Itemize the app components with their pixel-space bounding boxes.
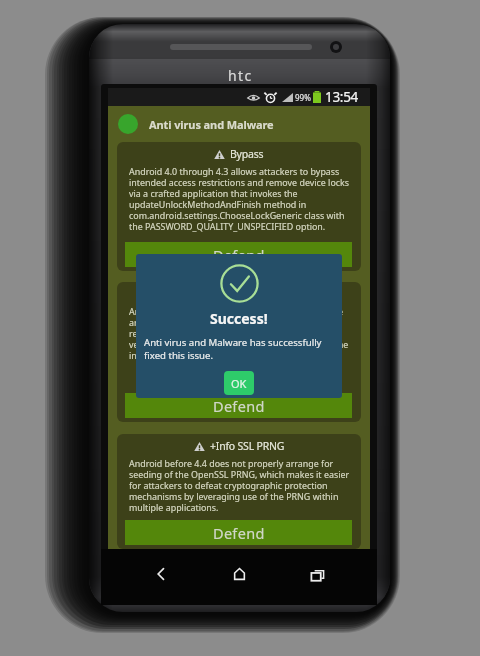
staticText: Defend	[213, 396, 265, 416]
staticText: Defend	[213, 245, 265, 265]
staticText: Anti virus and Malware has successfully …	[144, 336, 335, 362]
button[interactable]: Back	[143, 556, 179, 592]
button[interactable]: Recent apps	[299, 556, 335, 592]
staticText: Anti virus and Malware	[149, 117, 274, 132]
staticText: Android 1.6 through 4.2 allows attackers…	[129, 305, 352, 361]
staticText: Android before 4.4 does not properly arr…	[129, 457, 352, 513]
button[interactable]: Master Key	[117, 282, 361, 422]
button[interactable]: Home	[221, 556, 257, 592]
button[interactable]: Bypass	[117, 142, 361, 271]
staticText: +Info SSL PRNG	[210, 439, 285, 453]
staticText: 13:54	[325, 88, 359, 106]
button[interactable]: Defend	[125, 520, 352, 545]
staticText: htc	[228, 66, 253, 84]
staticText: Defend	[213, 523, 265, 543]
button[interactable]: +Info SSL PRNG	[117, 434, 361, 549]
staticText: Success!	[210, 309, 268, 328]
button[interactable]: Anti virus and Malware	[108, 106, 370, 142]
staticText: OK	[231, 376, 247, 391]
button[interactable]: Defend	[125, 393, 352, 418]
staticText: Android 4.0 through 4.3 allows attackers…	[129, 165, 352, 232]
button[interactable]: OK	[224, 371, 254, 395]
staticText: Bypass	[230, 147, 264, 161]
staticText: 99%	[295, 92, 311, 103]
staticText: Master Key	[221, 287, 274, 301]
button[interactable]: Defend	[125, 242, 352, 267]
